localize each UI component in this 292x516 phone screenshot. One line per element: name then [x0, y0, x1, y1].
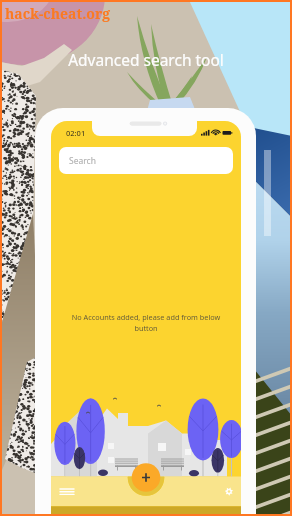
staticText: 02:01 — [66, 128, 86, 138]
staticText: No Accounts added, please add from below… — [61, 312, 231, 338]
staticText: Advanced search tool — [56, 49, 236, 71]
button[interactable]: Settings — [214, 478, 241, 506]
staticText: Search — [69, 155, 96, 167]
button[interactable]: Add account — [132, 463, 161, 492]
button[interactable]: Search — [59, 147, 233, 174]
staticText: hack-cheat.org — [5, 4, 111, 23]
button[interactable]: Menu — [55, 478, 85, 506]
